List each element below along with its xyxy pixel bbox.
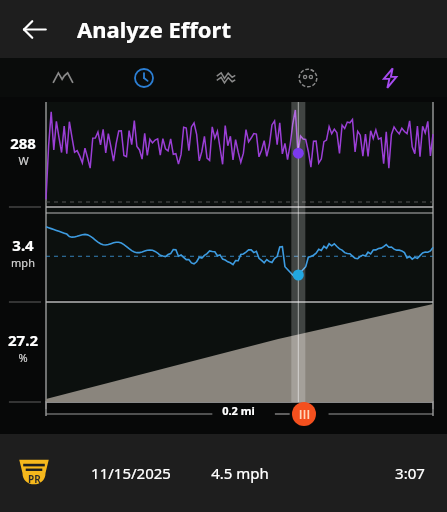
- other: Personal record: [15, 454, 53, 492]
- button[interactable]: Scrub handle: [292, 402, 316, 426]
- button[interactable]: Power: [349, 58, 431, 97]
- staticText: W: [18, 153, 29, 168]
- staticText: 3:07: [395, 463, 425, 483]
- staticText: 4.5 mph: [211, 463, 269, 483]
- staticText: mph: [11, 255, 35, 270]
- staticText: Analyze Effort: [77, 14, 231, 44]
- staticText: 11/15/2025: [91, 463, 171, 483]
- staticText: 3.4: [12, 235, 34, 255]
- button[interactable]: Time: [103, 58, 185, 97]
- staticText: 27.2: [8, 330, 38, 350]
- button[interactable]: Personal record: [0, 434, 447, 512]
- staticText: PR: [28, 472, 41, 486]
- staticText: 0.2 mi: [222, 403, 255, 418]
- button[interactable]: Heart rate: [185, 58, 267, 97]
- button[interactable]: Cadence: [267, 58, 349, 97]
- button[interactable]: Back: [13, 8, 55, 50]
- staticText: 288: [10, 133, 36, 153]
- staticText: %: [18, 350, 28, 365]
- button[interactable]: Elevation: [22, 58, 103, 97]
